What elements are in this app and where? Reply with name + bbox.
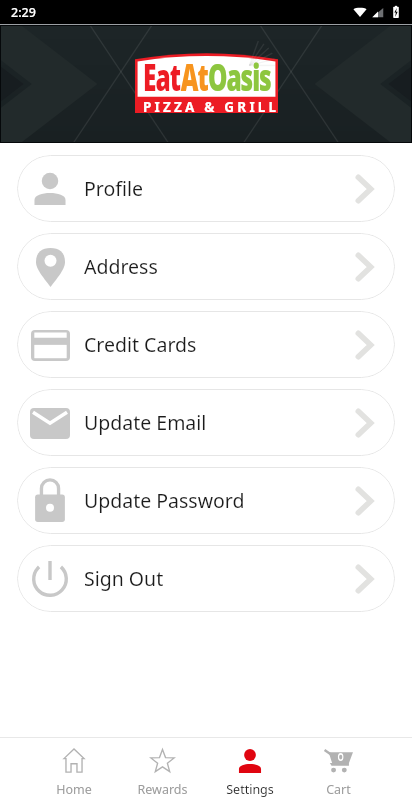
staticText: Address — [84, 253, 158, 280]
staticText: Oasis — [208, 52, 271, 101]
button[interactable]: Home — [30, 738, 118, 800]
button[interactable]: Sign Out — [17, 545, 395, 612]
staticText: PIZZA & GRILL — [143, 98, 280, 114]
button[interactable]: Settings — [206, 738, 294, 800]
staticText: Settings — [226, 781, 274, 798]
button[interactable]: Address — [17, 233, 395, 300]
staticText: Rewards — [137, 781, 188, 798]
staticText: Home — [56, 781, 92, 798]
staticText: Profile — [84, 175, 144, 202]
button[interactable]: Profile — [17, 155, 395, 222]
staticText: Sign Out — [84, 565, 164, 592]
staticText: Update Email — [84, 409, 207, 436]
button[interactable]: Update Email — [17, 389, 395, 456]
button[interactable]: Credit Cards — [17, 311, 395, 378]
staticText: At — [181, 52, 208, 101]
button[interactable]: Cart — [294, 738, 382, 800]
staticText: Eat — [143, 52, 181, 101]
staticText: 2:29 — [11, 4, 36, 21]
staticText: Update Password — [84, 487, 245, 514]
staticText: Credit Cards — [84, 331, 197, 358]
button[interactable]: Rewards — [118, 738, 206, 800]
button[interactable]: Update Password — [17, 467, 395, 534]
staticText: Cart — [326, 781, 351, 798]
